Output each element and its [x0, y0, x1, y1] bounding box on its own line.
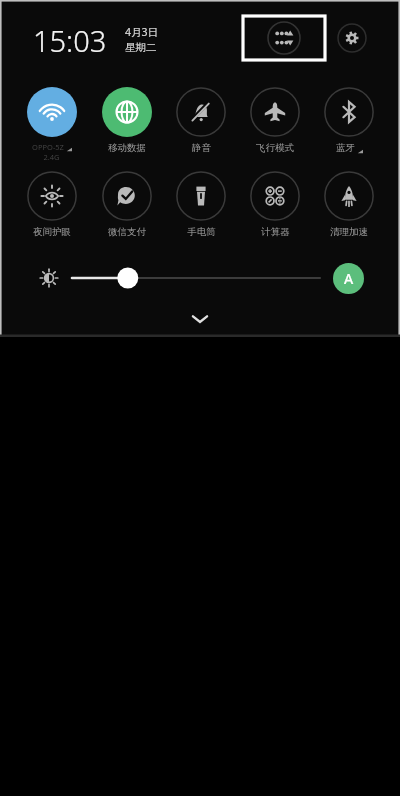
button[interactable]: 夜间护眼 — [14, 168, 89, 238]
staticText: 夜间护眼 — [33, 226, 71, 238]
button[interactable] — [72, 263, 320, 293]
staticText: 星期二 — [125, 41, 157, 54]
staticText: 飞行模式 — [256, 142, 294, 154]
staticText: 计算器 — [261, 226, 290, 238]
staticText: 4月3日 — [125, 25, 159, 39]
button[interactable]: 自动亮度 — [333, 263, 364, 294]
staticText: 静音 — [192, 142, 211, 154]
button[interactable]: OPPO-5Z — [14, 84, 89, 162]
staticText: 蓝牙 — [336, 142, 355, 154]
button[interactable]: 清理加速 — [312, 168, 386, 238]
button[interactable]: 静音 — [164, 84, 238, 154]
staticText: 15:03 — [33, 21, 107, 60]
button[interactable]: 移动数据 — [89, 84, 164, 154]
staticText: 移动数据 — [108, 142, 146, 154]
staticText: 手电筒 — [187, 226, 216, 238]
button[interactable]: 微信支付 — [89, 168, 164, 238]
staticText: 微信支付 — [108, 226, 146, 238]
button[interactable]: 展开 — [0, 306, 400, 332]
button[interactable]: 蓝牙 — [312, 84, 386, 154]
staticText: 清理加速 — [330, 226, 368, 238]
button[interactable]: 设置 — [334, 20, 370, 56]
staticText: A — [344, 269, 354, 288]
button[interactable]: 飞行模式 — [238, 84, 312, 154]
button[interactable]: 亮度 — [36, 265, 62, 291]
staticText: 2.4G — [43, 152, 60, 162]
button[interactable]: 编辑快捷开关 — [243, 16, 325, 60]
button[interactable]: 计算器 — [238, 168, 312, 238]
staticText: OPPO-5Z — [32, 142, 64, 152]
button[interactable]: 手电筒 — [164, 168, 238, 238]
